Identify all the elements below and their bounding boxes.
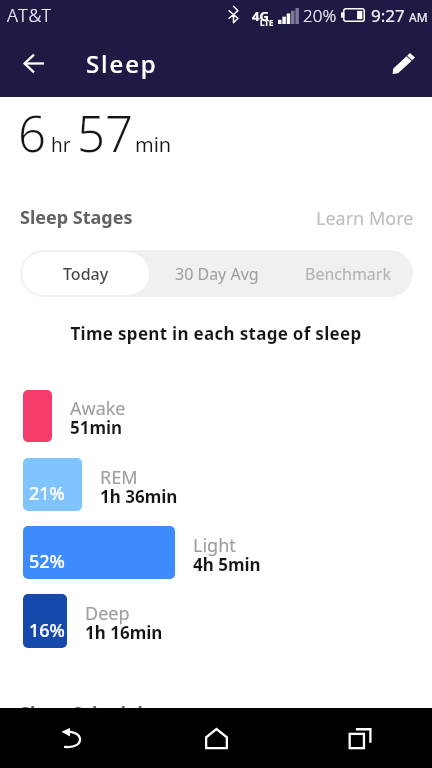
staticText: hr bbox=[51, 132, 71, 158]
button[interactable]: Back bbox=[10, 39, 58, 87]
staticText: REM bbox=[100, 465, 138, 490]
button[interactable]: Learn More bbox=[316, 206, 414, 231]
staticText: Sleep Stages bbox=[20, 205, 133, 230]
staticText: 30 Day Avg bbox=[175, 263, 259, 285]
staticText: 16% bbox=[29, 618, 65, 643]
staticText: 1h 36min bbox=[100, 485, 178, 508]
staticText: Learn More bbox=[316, 702, 414, 727]
staticText: AM bbox=[409, 9, 428, 25]
button[interactable]: Edit bbox=[379, 39, 427, 87]
staticText: 57 bbox=[77, 100, 133, 167]
button[interactable]: Learn More bbox=[316, 702, 414, 727]
staticText: Learn More bbox=[316, 206, 414, 231]
staticText: Sleep bbox=[86, 47, 158, 80]
button[interactable]: Home bbox=[144, 708, 288, 768]
staticText: 6 bbox=[18, 100, 46, 167]
staticText: 21% bbox=[29, 481, 65, 506]
staticText: Time spent in each stage of sleep bbox=[0, 322, 432, 345]
staticText: Awake bbox=[70, 396, 126, 421]
staticText: LTE bbox=[260, 17, 274, 28]
staticText: Benchmark bbox=[305, 263, 391, 285]
staticText: 1h 16min bbox=[85, 621, 163, 644]
staticText: 4h 5min bbox=[193, 553, 261, 576]
button[interactable]: Back bbox=[0, 708, 144, 768]
button[interactable]: Benchmark bbox=[282, 250, 413, 297]
staticText: Light bbox=[193, 533, 236, 558]
staticText: min bbox=[135, 131, 172, 158]
button[interactable]: Recent apps bbox=[288, 708, 432, 768]
staticText: 52% bbox=[29, 549, 65, 574]
staticText: 4G bbox=[252, 7, 269, 24]
staticText: 51min bbox=[70, 416, 123, 439]
staticText: AT&T bbox=[7, 3, 53, 28]
button[interactable]: Today bbox=[22, 252, 149, 295]
staticText: 9:27 bbox=[371, 4, 405, 27]
button[interactable]: 30 Day Avg bbox=[151, 250, 282, 297]
staticText: Sleep Schedule bbox=[20, 701, 154, 726]
staticText: Today bbox=[63, 263, 109, 285]
staticText: 20% bbox=[303, 4, 337, 27]
staticText: Deep bbox=[85, 601, 130, 626]
